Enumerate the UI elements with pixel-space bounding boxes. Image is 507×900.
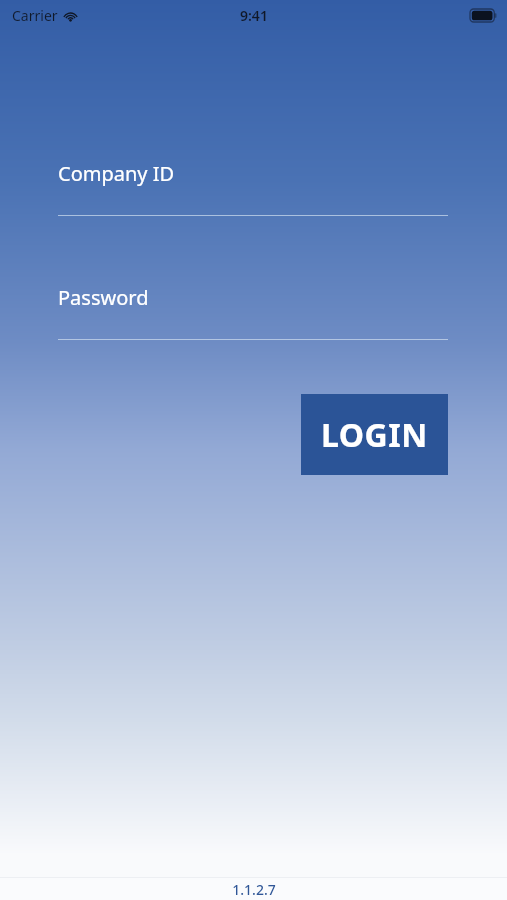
staticText: Carrier bbox=[12, 6, 58, 25]
staticText: Company ID bbox=[58, 160, 175, 187]
button[interactable]: Company ID bbox=[58, 160, 448, 216]
button[interactable]: Password bbox=[58, 284, 448, 340]
staticText: 1.1.2.7 bbox=[232, 880, 276, 899]
button[interactable]: LOGIN bbox=[301, 394, 448, 475]
staticText: Password bbox=[58, 284, 149, 311]
staticText: LOGIN bbox=[321, 413, 428, 457]
staticText: 9:41 bbox=[240, 6, 268, 25]
